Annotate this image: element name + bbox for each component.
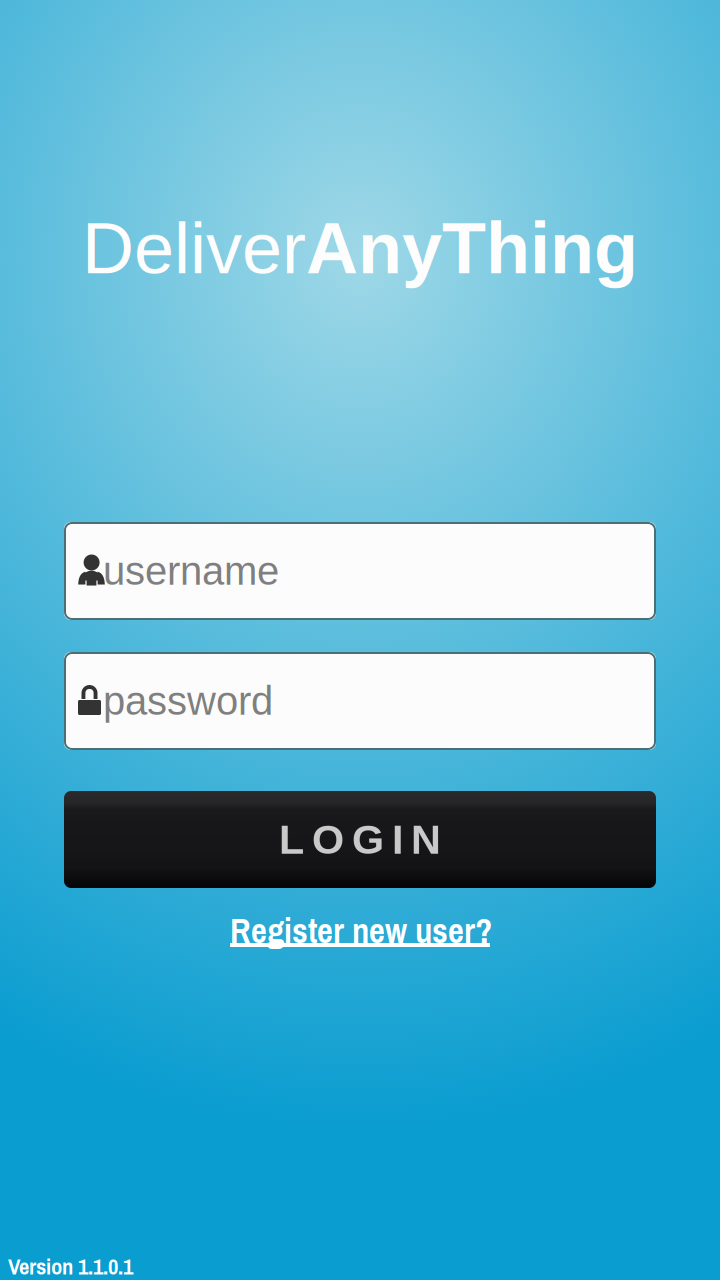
staticText: AnyThing [306,208,638,288]
staticText: password [103,679,273,723]
button[interactable]: Register new user? [230,917,510,955]
button[interactable]: L O G I N [64,791,656,888]
button[interactable]: username [64,522,656,620]
staticText: L O G I N [279,816,441,863]
staticText: username [103,549,279,593]
staticText: Version 1.1.0.1 [8,1251,133,1280]
staticText: Deliver [82,208,306,288]
staticText: Register new user? [230,907,492,954]
button[interactable]: password [64,652,656,750]
